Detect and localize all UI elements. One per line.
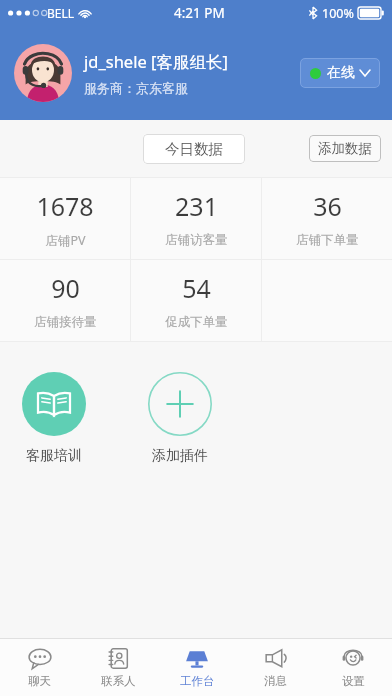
staticText: 店铺访客量 [165,232,228,248]
button[interactable]: 36 [262,178,392,259]
button[interactable]: 工作台 [158,639,236,696]
button[interactable]: 今日数据 [143,134,245,164]
staticText: 消息 [264,674,287,688]
staticText: jd_shele [客服组长] [84,50,228,73]
button[interactable]: 1678 [0,178,130,259]
staticText: 店铺PV [45,232,86,249]
button[interactable]: 添加数据 [309,135,381,162]
staticText: 客服培训 [26,447,82,465]
button[interactable]: 90 [0,260,130,341]
staticText: 设置 [342,674,365,688]
staticText: 1678 [36,189,94,223]
staticText: 工作台 [180,674,215,688]
staticText: 联系人 [101,674,136,688]
staticText: 今日数据 [165,140,223,158]
staticText: 在线 [327,64,355,82]
button[interactable]: 54 [131,260,261,341]
staticText: BELL [47,5,75,21]
staticText: 店铺下单量 [296,232,359,248]
button[interactable]: 添加插件 [148,372,212,465]
staticText: 54 [182,271,211,305]
button[interactable]: Profile avatar [14,44,72,102]
staticText: 促成下单量 [165,314,228,330]
staticText: 4:21 PM [174,4,225,22]
staticText: 聊天 [28,674,51,688]
button[interactable]: 消息 [236,639,314,696]
staticText: 添加数据 [318,140,372,157]
staticText: 90 [51,271,80,305]
button[interactable]: 联系人 [79,639,158,696]
staticText: 店铺接待量 [34,314,97,330]
button[interactable]: 客服培训 [22,372,86,465]
staticText: 服务商：京东客服 [84,80,188,96]
button[interactable]: 设置 [314,639,392,696]
button[interactable]: 231 [131,178,261,259]
staticText: 100% [322,5,354,22]
button[interactable]: 聊天 [0,639,79,696]
staticText: 36 [313,189,342,223]
staticText: 添加插件 [152,447,208,465]
staticText: 231 [175,189,218,223]
button[interactable]: 在线 [300,58,380,88]
